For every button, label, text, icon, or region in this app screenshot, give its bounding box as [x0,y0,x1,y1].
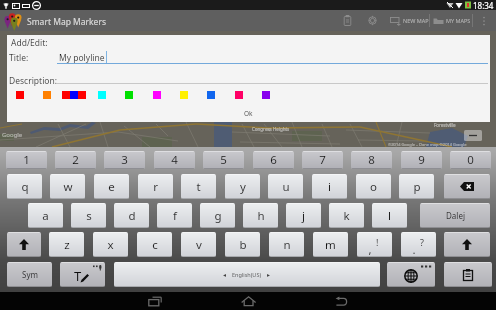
staticText: r [153,179,158,195]
button[interactable]: f [157,203,192,228]
button[interactable]: 7 [302,151,343,169]
staticText: ◂ [223,271,227,278]
staticText: English(US) [232,271,262,278]
button[interactable]: l [372,203,407,228]
staticText: . [412,242,416,257]
staticText: Ok [244,109,253,118]
button[interactable]: z [49,232,84,257]
button[interactable]: MY MAPS [431,10,473,31]
button[interactable]: Change language [387,262,435,287]
button[interactable]: v [181,232,216,257]
staticText: 8 [368,152,375,168]
button[interactable]: NEW MAP [388,10,430,31]
button[interactable]: 3 [104,151,145,169]
button[interactable]: i [312,174,347,199]
staticText: Forestville [434,122,456,128]
button[interactable]: q [7,174,42,199]
button[interactable]: e [94,174,129,199]
button[interactable]: g [200,203,235,228]
staticText: t [196,179,201,195]
button[interactable]: Shift [7,232,41,257]
staticText: 5 [220,152,227,168]
staticText: Add/Edit: [11,37,48,49]
button[interactable]: a [28,203,63,228]
staticText: 2 [72,152,79,168]
button[interactable]: Dalej [420,203,490,228]
button[interactable]: k [329,203,364,228]
button[interactable]: . [401,232,436,257]
staticText: ©2014 Google – Dane map ©2014 Google [388,142,467,147]
button[interactable]: 4 [154,151,195,169]
button[interactable]: 9 [401,151,442,169]
staticText: NEW MAP [403,17,429,24]
button[interactable]: h [243,203,278,228]
staticText: k [343,208,350,224]
button[interactable]: Clipboard [444,262,492,287]
button[interactable]: More options [476,10,492,31]
button[interactable]: Back [317,292,365,310]
button[interactable]: Home [224,292,272,310]
staticText: x [107,237,114,253]
staticText: ▸ [267,271,271,278]
button[interactable]: d [114,203,149,228]
staticText: 6 [270,152,277,168]
staticText: g [214,208,222,224]
button[interactable]: n [269,232,304,257]
button[interactable]: r [138,174,173,199]
button[interactable]: x [93,232,128,257]
staticText: h [257,208,265,224]
staticText: Sym [22,269,38,280]
button[interactable]: 1 [6,151,47,169]
button[interactable]: 8 [351,151,392,169]
button[interactable]: y [225,174,260,199]
staticText: MY MAPS [446,17,471,24]
button[interactable]: c [137,232,172,257]
button[interactable]: Recents [131,292,179,310]
button[interactable]: t [181,174,216,199]
button[interactable]: o [356,174,391,199]
button[interactable]: Compass [360,10,385,31]
staticText: c [152,237,158,253]
staticText: 0 [467,152,474,168]
staticText: a [42,208,49,224]
staticText: f [173,208,177,224]
button[interactable]: Notes [335,10,360,31]
button[interactable]: Shift [444,232,490,257]
button[interactable]: , [357,232,392,257]
button[interactable]: Colour blue selected [62,91,86,99]
button[interactable]: Space [114,262,380,287]
button[interactable]: s [71,203,106,228]
button[interactable]: Ok [7,104,490,122]
staticText: 7 [319,152,326,168]
button[interactable]: 6 [253,151,294,169]
staticText: Dalej [446,210,465,221]
button[interactable]: p [399,174,434,199]
button[interactable]: j [286,203,321,228]
button[interactable]: m [313,232,348,257]
staticText: m [325,237,336,253]
button[interactable]: u [268,174,303,199]
staticText: Description: [9,75,58,87]
button[interactable]: Handwriting [60,262,105,287]
button[interactable]: w [50,174,85,199]
staticText: e [108,179,115,195]
staticText: y [240,179,246,195]
button[interactable]: 5 [203,151,244,169]
button[interactable]: 0 [450,151,491,169]
button[interactable]: Sym [7,262,52,287]
staticText: Congress Heights [252,126,290,132]
button[interactable]: b [225,232,260,257]
button[interactable]: 2 [55,151,96,169]
button[interactable]: Backspace [444,174,490,199]
staticText: i [328,179,331,195]
staticText: b [239,237,247,253]
